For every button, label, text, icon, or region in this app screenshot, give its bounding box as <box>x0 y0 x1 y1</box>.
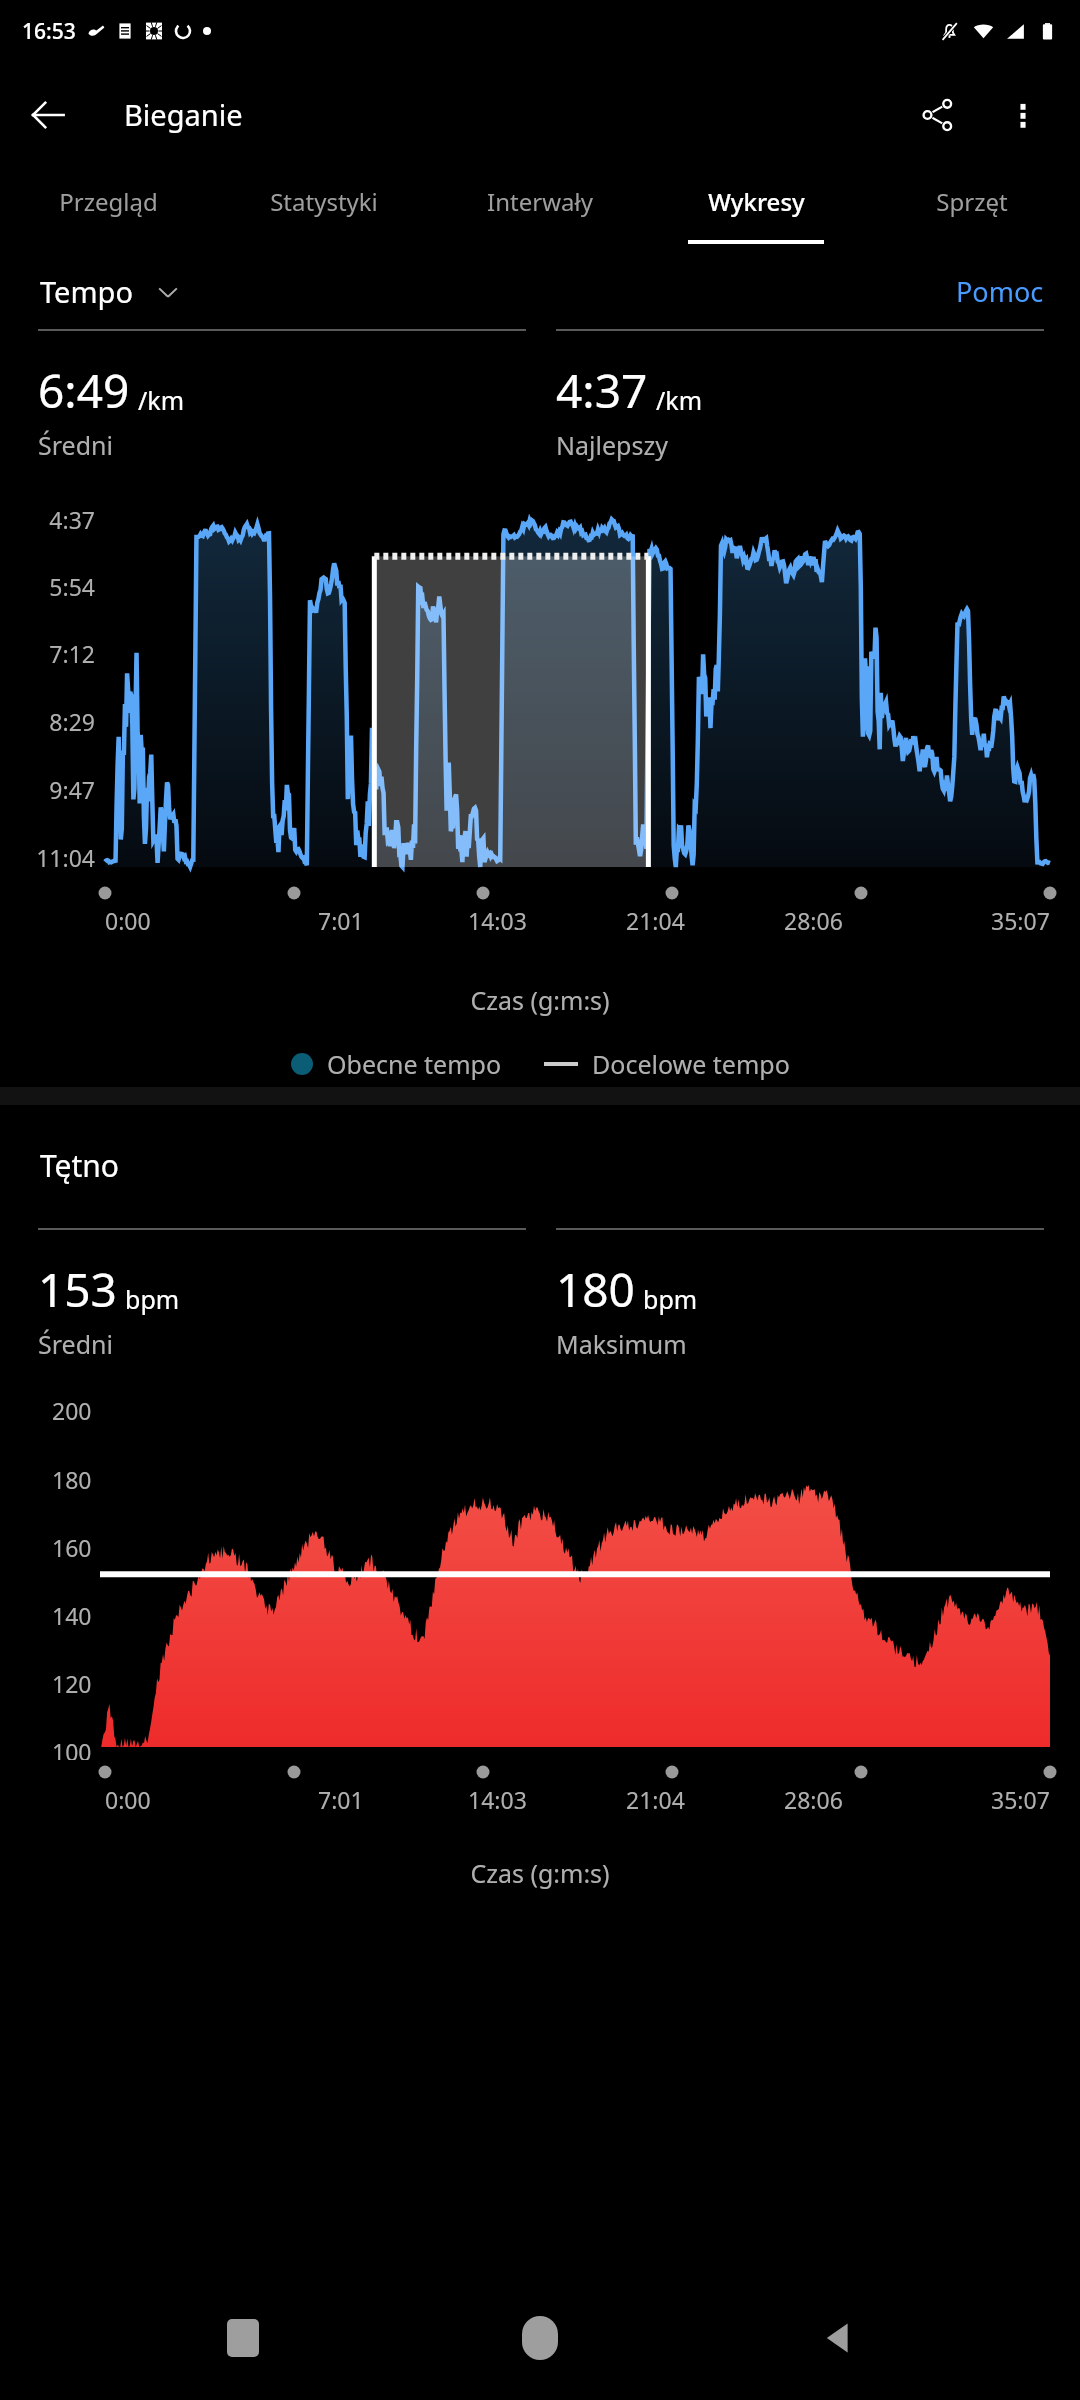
staticText: 120 <box>52 1668 92 1699</box>
staticText: 28:06 <box>784 905 843 936</box>
staticText: 0:00 <box>105 905 151 936</box>
staticText: Statystyki <box>270 185 378 218</box>
staticText: 7:01 <box>318 1784 364 1815</box>
staticText: 160 <box>52 1532 92 1563</box>
staticText: 21:04 <box>626 1784 685 1815</box>
staticText: 14:03 <box>468 1784 527 1815</box>
staticText: /km <box>138 383 185 417</box>
staticText: 7:12 <box>49 638 95 669</box>
staticText: 9:47 <box>49 774 95 805</box>
staticText: bpm <box>643 1282 698 1316</box>
staticText: 16:53 <box>22 17 76 46</box>
staticText: 7:01 <box>318 905 364 936</box>
staticText: 180 <box>556 1258 635 1321</box>
staticText: 5:54 <box>49 571 95 602</box>
staticText: Wykresy <box>708 185 805 218</box>
button[interactable]: Pomoc <box>956 273 1044 310</box>
staticText: Średni <box>38 428 113 462</box>
staticText: 35:07 <box>991 905 1050 936</box>
staticText: 11:04 <box>36 842 95 873</box>
staticText: Sprzęt <box>936 185 1008 218</box>
staticText: Docelowe tempo <box>592 1047 790 1081</box>
button[interactable]: Back <box>783 2283 893 2393</box>
button[interactable]: Recent apps <box>188 2283 298 2393</box>
button[interactable]: More options <box>980 72 1066 158</box>
button[interactable]: Interwały <box>432 167 648 247</box>
staticText: Tętno <box>40 1145 120 1186</box>
staticText: 28:06 <box>784 1784 843 1815</box>
staticText: 21:04 <box>626 905 685 936</box>
button[interactable]: Share <box>894 72 980 158</box>
other: Expand <box>155 279 181 305</box>
staticText: bpm <box>125 1282 180 1316</box>
button[interactable]: Statystyki <box>216 167 432 247</box>
staticText: Średni <box>38 1327 113 1361</box>
button[interactable]: Wykresy <box>648 167 864 247</box>
staticText: Czas (g:m:s) <box>0 1856 1080 1890</box>
staticText: 200 <box>52 1395 92 1426</box>
staticText: Pomoc <box>956 273 1044 310</box>
staticText: Maksimum <box>556 1327 687 1361</box>
staticText: 4:37 <box>49 504 95 535</box>
staticText: Przegląd <box>59 185 158 218</box>
staticText: /km <box>656 383 703 417</box>
staticText: 4:37 <box>556 359 648 422</box>
staticText: Tempo <box>40 272 133 311</box>
button[interactable]: Tempo <box>40 272 181 311</box>
staticText: Czas (g:m:s) <box>0 983 1080 1017</box>
staticText: 8:29 <box>49 706 95 737</box>
staticText: 6:49 <box>38 359 130 422</box>
staticText: 100 <box>52 1736 92 1760</box>
button[interactable]: Przegląd <box>0 167 216 247</box>
staticText: 14:03 <box>468 905 527 936</box>
button[interactable]: Sprzęt <box>864 167 1080 247</box>
staticText: Obecne tempo <box>327 1047 502 1081</box>
staticText: 180 <box>52 1464 92 1495</box>
staticText: Interwały <box>487 185 593 218</box>
staticText: Bieganie <box>124 95 243 134</box>
staticText: 35:07 <box>991 1784 1050 1815</box>
staticText: 153 <box>38 1258 117 1321</box>
button[interactable]: Home <box>485 2283 595 2393</box>
staticText: Najlepszy <box>556 428 668 462</box>
staticText: 0:00 <box>105 1784 151 1815</box>
button[interactable]: Back <box>0 67 96 163</box>
staticText: 140 <box>52 1600 92 1631</box>
